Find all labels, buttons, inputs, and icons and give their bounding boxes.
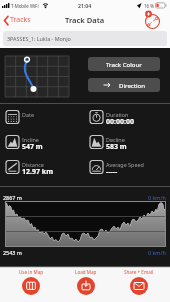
staticText: T-Mobile WiFi	[11, 3, 39, 9]
staticText: Direction	[119, 81, 146, 89]
staticText: 2867 m	[3, 194, 22, 201]
button[interactable]: Tracks	[3, 13, 37, 29]
staticText: 3PASSES_1: Lukla - Monjo	[7, 35, 71, 42]
staticText: Load Map	[75, 269, 97, 275]
staticText: Incline	[22, 136, 39, 143]
button[interactable]	[143, 11, 164, 32]
staticText: 2543 m	[3, 249, 22, 256]
staticText: 547 m	[22, 142, 43, 152]
staticText: Distance	[22, 161, 44, 168]
staticText: Duration	[106, 111, 129, 118]
staticText: 16 %	[144, 3, 154, 9]
button[interactable]: Use in Map	[9, 269, 53, 295]
staticText: Decline	[106, 136, 125, 143]
button[interactable]	[5, 56, 69, 97]
button[interactable]: Track Colour	[88, 57, 160, 71]
staticText: Average Speed	[106, 161, 144, 168]
staticText: 21:04	[78, 2, 92, 9]
button[interactable]: Load Map	[64, 269, 108, 295]
staticText: Share + Email	[124, 269, 154, 275]
staticText: 0 km/h	[148, 194, 166, 201]
staticText: Track Data	[65, 15, 105, 25]
staticText: 00:00:00	[106, 117, 134, 127]
staticText: 583 m	[106, 142, 127, 152]
staticText: 12.97 km	[22, 167, 53, 177]
button[interactable]: Direction	[88, 78, 160, 92]
staticText: -----	[106, 167, 118, 177]
staticText: Date	[22, 111, 34, 118]
staticText: 0 km/h	[148, 249, 166, 256]
staticText: Use in Map	[19, 269, 44, 275]
staticText: Track Colour	[106, 60, 142, 68]
staticText: Tracks	[10, 15, 31, 25]
button[interactable]: Share + Email	[117, 269, 161, 295]
